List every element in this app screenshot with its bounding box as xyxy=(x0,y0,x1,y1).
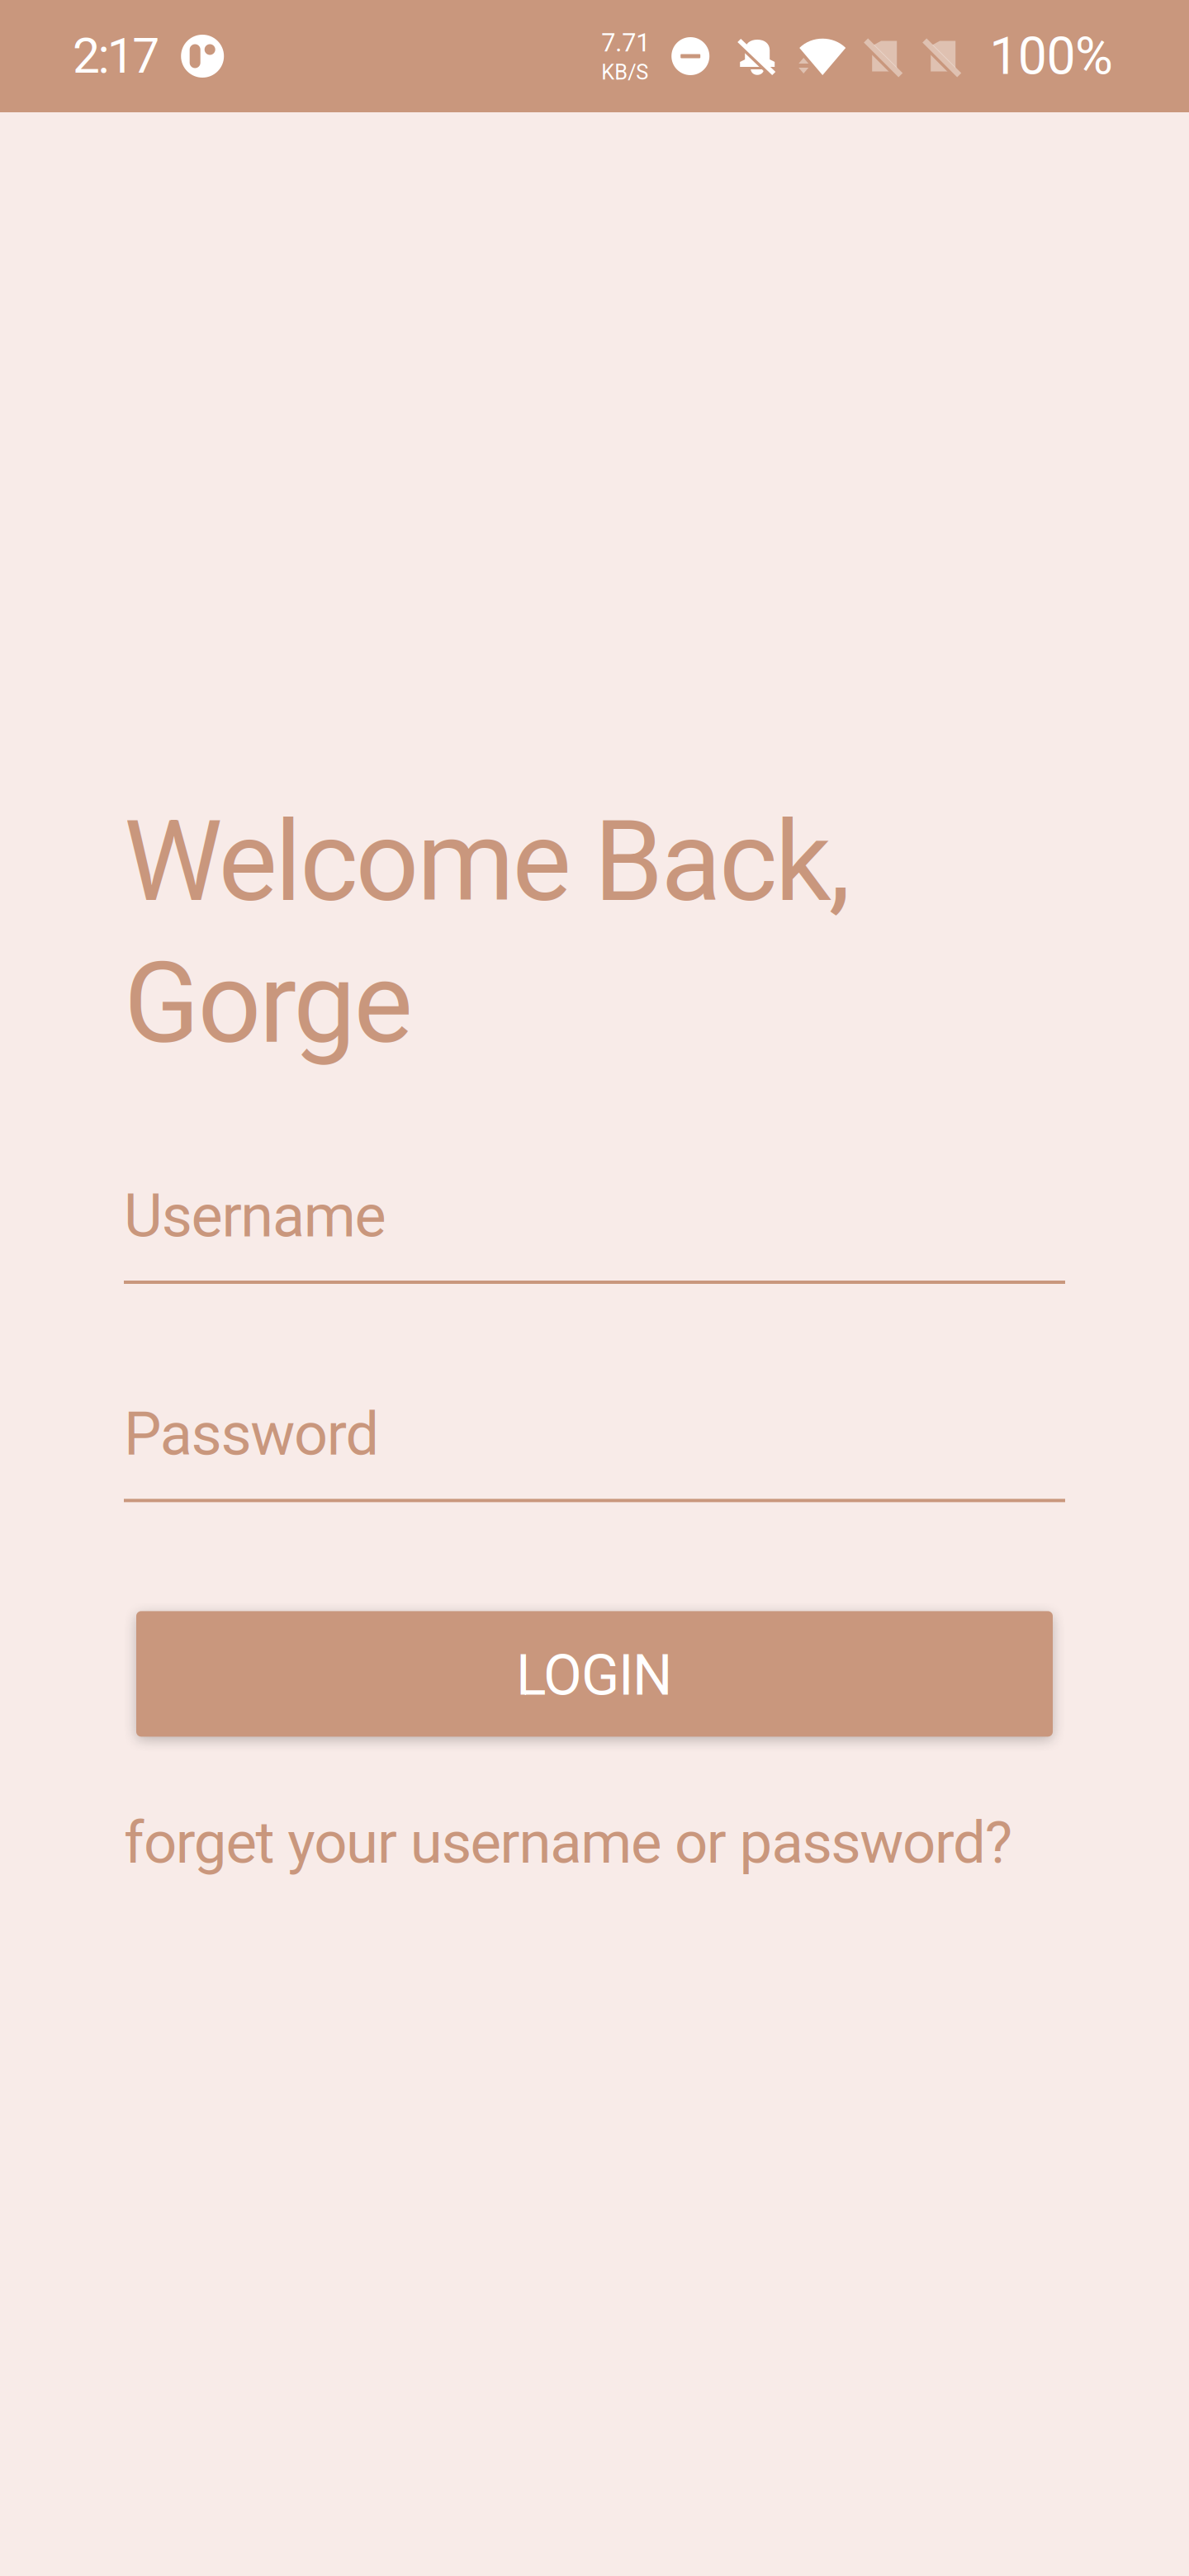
staticText: LOGIN xyxy=(516,1643,673,1708)
staticText: KB/S xyxy=(601,60,648,84)
staticText: Welcome Back, xyxy=(124,797,850,927)
staticText: Gorge xyxy=(124,939,413,1069)
staticText: 7.71 xyxy=(601,28,650,57)
staticText: forget your username or password? xyxy=(124,1808,1012,1877)
staticText: Username xyxy=(124,1181,386,1251)
button[interactable]: Username xyxy=(124,1181,1065,1284)
button[interactable]: forget your username or password? xyxy=(124,1808,1012,1877)
button[interactable]: LOGIN xyxy=(136,1611,1053,1737)
staticText: 2:17 xyxy=(73,28,160,85)
button[interactable]: Password xyxy=(124,1399,1065,1502)
staticText: Password xyxy=(124,1399,379,1469)
staticText: 100% xyxy=(989,26,1113,86)
